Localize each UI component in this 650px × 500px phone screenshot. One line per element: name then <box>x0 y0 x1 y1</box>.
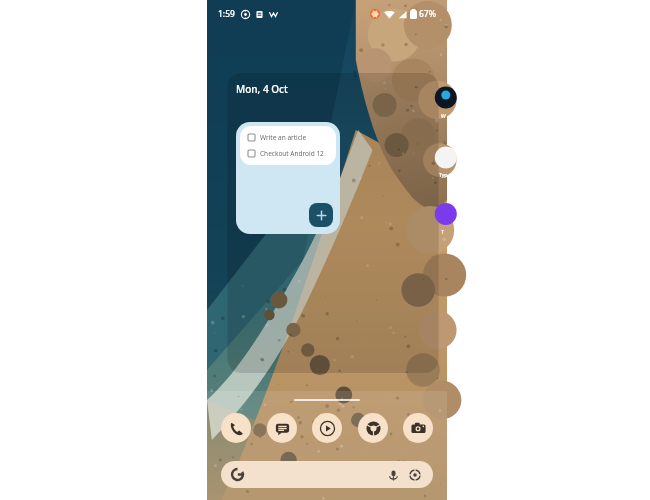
staticText: W <box>441 113 446 120</box>
button[interactable]: Write an article <box>248 133 328 142</box>
staticText: 1:59 <box>218 8 235 20</box>
button[interactable]: Messages <box>267 413 297 443</box>
button[interactable]: Voice search <box>385 467 401 483</box>
button[interactable]: Play Store <box>312 413 342 443</box>
staticText: T <box>441 229 444 236</box>
button[interactable]: Chrome <box>358 413 388 443</box>
staticText: 67% <box>419 8 436 20</box>
staticText: Write an article <box>260 133 307 142</box>
button[interactable]: Add task <box>309 203 333 227</box>
staticText: Checkout Android 12 <box>260 149 324 158</box>
button[interactable]: Phone <box>221 413 251 443</box>
staticText: Typ <box>439 172 448 179</box>
staticText: Mon, 4 Oct <box>236 82 288 96</box>
button[interactable]: Write an article <box>236 122 340 234</box>
button[interactable]: Checkout Android 12 <box>248 149 328 158</box>
button[interactable]: Camera <box>403 413 433 443</box>
button[interactable]: Voice search <box>221 461 433 488</box>
button[interactable]: Google Lens <box>407 467 423 483</box>
